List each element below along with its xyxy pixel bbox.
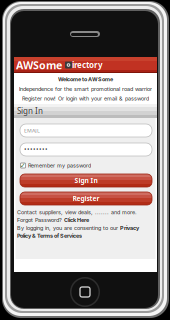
staticText: Register now! Or login with your email &…	[22, 95, 149, 102]
staticText: ✓	[20, 162, 26, 169]
staticText: ome	[39, 58, 62, 72]
staticText: By logging in, you are consenting to our	[17, 225, 118, 231]
staticText: Contact suppliers, view deals, ....... a…	[17, 209, 137, 216]
staticText: AWS	[16, 58, 39, 72]
button[interactable]: Policy & Terms of Services	[17, 232, 82, 239]
staticText: ••••••••	[24, 145, 48, 154]
button[interactable]: ✓	[20, 162, 152, 169]
staticText: Forgot Password?	[17, 217, 62, 223]
staticText: Remember my password	[28, 162, 91, 169]
button[interactable]: Home	[70, 277, 100, 307]
staticText: Click Here	[64, 217, 89, 223]
button[interactable]: Privacy	[120, 225, 139, 231]
staticText: Independence for the smart promotional r…	[19, 86, 152, 92]
button[interactable]: Sign In	[20, 174, 152, 187]
staticText: Register	[72, 194, 99, 203]
staticText: Privacy	[120, 225, 139, 231]
staticText: Sign In	[74, 176, 97, 185]
button[interactable]: Click Here	[64, 217, 89, 223]
staticText: Policy & Terms of Services	[17, 232, 82, 239]
staticText: EMAIL	[24, 127, 40, 134]
staticText: irectory	[72, 60, 103, 70]
button[interactable]: Register	[20, 192, 152, 205]
staticText: Sign In	[17, 106, 43, 116]
staticText: Welcome to AWSome	[58, 76, 113, 83]
